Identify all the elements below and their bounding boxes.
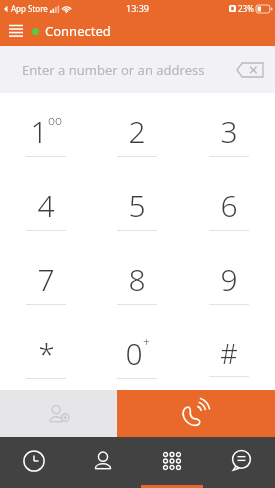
button[interactable]: Messages (206, 437, 275, 488)
button[interactable]: Menu (6, 21, 26, 41)
button[interactable]: Call (117, 390, 275, 437)
staticText: 4 (37, 185, 55, 226)
staticText: 1 (30, 111, 48, 152)
staticText: 3 (220, 111, 238, 152)
staticText: 5 (128, 185, 146, 226)
button[interactable]: 2 (91, 93, 183, 168)
button[interactable]: 8 (91, 242, 183, 316)
button[interactable]: Keypad (137, 437, 206, 488)
staticText: 13:39 (126, 2, 150, 14)
staticText: Enter a number or an address (22, 61, 205, 79)
button[interactable]: 9 (183, 242, 275, 316)
button[interactable]: Recents (0, 437, 68, 488)
staticText: 9 (220, 259, 238, 300)
staticText: + (143, 334, 150, 350)
staticText: 7 (37, 259, 55, 300)
staticText: 6 (220, 185, 238, 226)
button[interactable]: Enter a number or an address (0, 46, 275, 93)
staticText: App Store (11, 3, 48, 14)
staticText: 23% (238, 3, 254, 14)
button[interactable]: Backspace (233, 59, 267, 81)
staticText: 0 (125, 333, 143, 374)
staticText: 2 (128, 111, 146, 152)
button[interactable]: Contacts (68, 437, 137, 488)
staticText: oo (48, 112, 63, 128)
button[interactable]: * (0, 316, 91, 390)
button[interactable]: 7 (0, 242, 91, 316)
button[interactable]: 6 (183, 168, 275, 242)
button[interactable]: 3 (183, 93, 275, 168)
button[interactable]: # (183, 316, 275, 390)
staticText: Connected (45, 22, 111, 40)
button[interactable]: 5 (91, 168, 183, 242)
staticText: 8 (128, 259, 146, 300)
staticText: # (220, 335, 238, 372)
staticText: * (38, 333, 55, 374)
button[interactable]: 4 (0, 168, 91, 242)
button[interactable]: 1 (0, 93, 91, 168)
button[interactable]: Add contact (0, 390, 117, 437)
button[interactable]: 0 (91, 316, 183, 390)
